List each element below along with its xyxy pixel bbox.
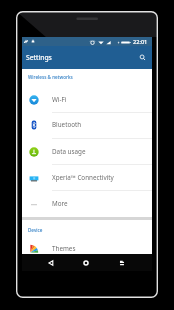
button[interactable]: Recents (113, 254, 131, 271)
staticText: Xperia™ Connectivity (52, 173, 114, 182)
staticText: Data usage (52, 147, 86, 156)
button[interactable]: Search (132, 46, 152, 69)
staticText: Settings (26, 53, 52, 62)
button[interactable]: Home (77, 254, 95, 271)
staticText: 22:01 (133, 38, 148, 46)
button[interactable]: Themes (22, 236, 152, 261)
button[interactable]: Data usage (22, 139, 152, 164)
staticText: More (52, 199, 68, 208)
staticText: Wi-Fi (52, 95, 67, 104)
button[interactable]: Wi-Fi (22, 87, 152, 112)
button[interactable]: Back (42, 254, 60, 271)
button[interactable]: Xperia™ Connectivity (22, 165, 152, 190)
button[interactable]: More (22, 191, 152, 216)
staticText: Wireless & networks (28, 74, 73, 80)
staticText: Device (28, 227, 43, 233)
button[interactable]: Bluetooth (22, 112, 152, 137)
staticText: Themes (52, 244, 76, 253)
staticText: Bluetooth (52, 120, 82, 129)
